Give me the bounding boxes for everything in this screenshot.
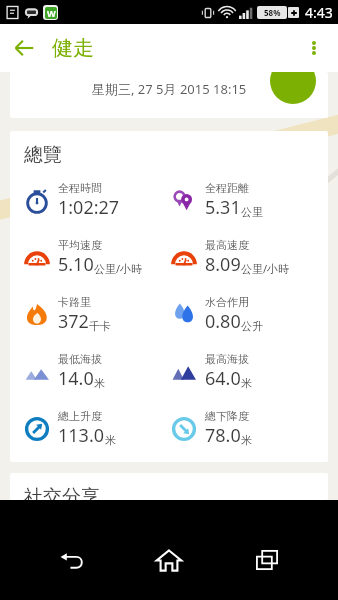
- staticText: 平均速度: [58, 238, 102, 252]
- staticText: 5.31: [205, 195, 241, 220]
- button[interactable]: Back: [46, 534, 98, 586]
- staticText: 4:43: [305, 3, 333, 22]
- staticText: 58%: [264, 7, 281, 18]
- button[interactable]: 星期三, 27 5月 2015 18:15: [10, 72, 328, 118]
- staticText: 總覽: [24, 143, 62, 167]
- button[interactable]: 平均速度: [24, 238, 171, 277]
- staticText: 公升: [241, 319, 263, 333]
- button[interactable]: 全程時間: [24, 181, 171, 220]
- staticText: 總下降度: [205, 409, 249, 423]
- staticText: 米: [94, 376, 105, 390]
- staticText: 社交分享: [24, 485, 100, 500]
- staticText: 米: [241, 433, 252, 447]
- staticText: 全程距離: [205, 181, 249, 195]
- staticText: W: [47, 7, 56, 19]
- button[interactable]: 最高速度: [171, 238, 318, 277]
- staticText: 公里/小時: [241, 261, 290, 276]
- button[interactable]: 最高海拔: [171, 352, 318, 391]
- button[interactable]: 社交分享: [10, 473, 328, 500]
- staticText: 最低海拔: [58, 352, 102, 366]
- button[interactable]: 全程距離: [171, 181, 318, 220]
- staticText: 最高海拔: [205, 352, 249, 366]
- staticText: 星期三, 27 5月 2015 18:15: [92, 80, 247, 98]
- staticText: 最高速度: [205, 238, 249, 252]
- staticText: 公里: [241, 205, 263, 219]
- staticText: 0.80: [205, 309, 241, 334]
- button[interactable]: Recent apps: [241, 534, 293, 586]
- staticText: 全程時間: [58, 181, 102, 195]
- button[interactable]: 總上升度: [24, 409, 171, 448]
- button[interactable]: 總下降度: [171, 409, 318, 448]
- button[interactable]: More options: [290, 24, 338, 72]
- button[interactable]: Back: [0, 24, 48, 72]
- button[interactable]: 最低海拔: [24, 352, 171, 391]
- staticText: 總上升度: [58, 409, 102, 423]
- staticText: 千卡: [89, 319, 111, 333]
- staticText: 5.10: [58, 252, 94, 277]
- staticText: 113.0: [58, 423, 105, 448]
- button[interactable]: 水合作用: [171, 295, 318, 334]
- staticText: 米: [105, 433, 116, 447]
- staticText: 公里/小時: [94, 261, 143, 276]
- staticText: 64.0: [205, 366, 241, 391]
- staticText: 1:02:27: [58, 195, 120, 220]
- button[interactable]: Home: [143, 534, 195, 586]
- staticText: 米: [241, 376, 252, 390]
- staticText: 372: [58, 309, 89, 334]
- staticText: 健走: [52, 35, 94, 61]
- staticText: 14.0: [58, 366, 94, 391]
- staticText: 水合作用: [205, 295, 249, 309]
- staticText: 8.09: [205, 252, 241, 277]
- button[interactable]: 卡路里: [24, 295, 171, 334]
- staticText: 卡路里: [58, 295, 91, 309]
- staticText: 78.0: [205, 423, 241, 448]
